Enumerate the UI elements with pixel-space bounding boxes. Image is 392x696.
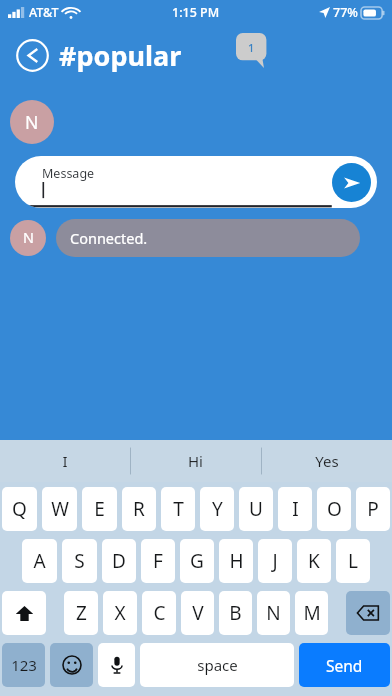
staticText: V (192, 600, 204, 626)
staticText: R (133, 496, 145, 522)
button[interactable]: Back (16, 39, 49, 72)
staticText: P (367, 496, 379, 522)
staticText: Hi (188, 451, 203, 471)
staticText: T (173, 496, 184, 522)
button[interactable]: Connected. (56, 219, 360, 257)
button[interactable]: D (102, 539, 136, 583)
staticText: I (292, 496, 299, 522)
staticText: L (348, 548, 358, 574)
button[interactable]: I (0, 440, 130, 482)
button[interactable]: space (140, 643, 294, 687)
button[interactable]: Voice input (98, 643, 135, 687)
staticText: Yes (315, 451, 339, 471)
button[interactable]: F (141, 539, 175, 583)
staticText: M (303, 600, 321, 626)
button[interactable]: H (219, 539, 253, 583)
staticText: N (266, 600, 281, 626)
staticText: H (229, 548, 244, 574)
staticText: Z (76, 600, 87, 626)
button[interactable]: 123 (2, 643, 45, 687)
staticText: 1 (248, 40, 255, 55)
staticText: 1:15 PM (172, 4, 220, 21)
staticText: Send (326, 655, 363, 676)
staticText: S (74, 548, 85, 574)
staticText: N (23, 228, 34, 248)
button[interactable]: Hi (130, 440, 261, 482)
button[interactable]: V (181, 591, 214, 635)
button[interactable]: N (257, 591, 290, 635)
button[interactable]: X (103, 591, 137, 635)
staticText: #popular (59, 37, 182, 74)
staticText: space (197, 655, 238, 675)
staticText: A (33, 548, 46, 574)
button[interactable]: G (180, 539, 214, 583)
button[interactable]: K (297, 539, 331, 583)
button[interactable]: L (336, 539, 370, 583)
button[interactable]: Y (200, 487, 234, 531)
button[interactable]: Messages (236, 33, 274, 71)
button[interactable]: I (278, 487, 312, 531)
staticText: Y (212, 496, 223, 522)
button[interactable]: Shift (2, 591, 46, 635)
button[interactable]: C (142, 591, 176, 635)
button[interactable]: T (161, 487, 195, 531)
button[interactable]: R (122, 487, 156, 531)
button[interactable]: B (219, 591, 252, 635)
staticText: K (308, 548, 320, 574)
staticText: U (249, 496, 263, 522)
staticText: X (114, 600, 126, 626)
staticText: Connected. (70, 228, 148, 248)
button[interactable]: U (239, 487, 273, 531)
button[interactable]: Z (64, 591, 98, 635)
staticText: J (272, 548, 278, 574)
staticText: Message (42, 165, 95, 182)
button[interactable]: W (42, 487, 77, 531)
button[interactable]: A (22, 539, 57, 583)
button[interactable]: Q (2, 487, 37, 531)
staticText: B (229, 600, 242, 626)
button[interactable]: Backspace (346, 591, 390, 635)
staticText: I (62, 451, 68, 471)
button[interactable]: S (62, 539, 97, 583)
staticText: 77% (333, 4, 358, 21)
button[interactable]: Yes (261, 440, 392, 482)
staticText: C (153, 600, 166, 626)
staticText: G (190, 548, 204, 574)
staticText: O (327, 496, 342, 522)
staticText: N (25, 110, 39, 134)
staticText: D (112, 548, 126, 574)
button[interactable]: M (295, 591, 328, 635)
button[interactable]: Message (15, 156, 377, 208)
staticText: F (153, 548, 163, 574)
staticText: AT&T (29, 4, 59, 21)
button[interactable]: Emoji (50, 643, 93, 687)
staticText: E (94, 496, 105, 522)
staticText: Q (12, 496, 27, 522)
button[interactable]: E (82, 487, 117, 531)
staticText: W (51, 496, 69, 522)
staticText: 123 (11, 655, 37, 675)
button[interactable]: P (356, 487, 390, 531)
button[interactable]: J (258, 539, 292, 583)
button[interactable]: Send (299, 643, 390, 687)
button[interactable]: O (317, 487, 351, 531)
button[interactable]: Send (332, 163, 371, 202)
